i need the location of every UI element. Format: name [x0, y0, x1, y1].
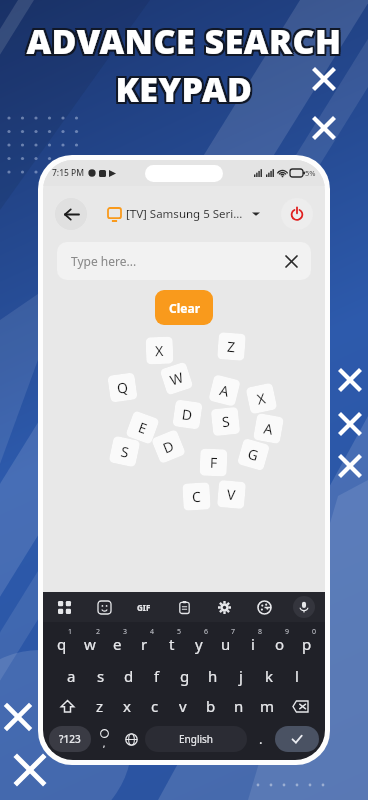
staticText: KEYPAD [115, 64, 253, 110]
button[interactable]: 2 [76, 626, 104, 658]
button[interactable]: 0 [293, 626, 320, 658]
staticText: ADVANCE SEARCH [24, 16, 340, 62]
button[interactable]: 5 [158, 626, 185, 658]
button[interactable]: k [255, 658, 283, 690]
button[interactable]: Type here... [57, 242, 311, 280]
button[interactable]: s [86, 658, 115, 690]
staticText: S [221, 412, 231, 431]
button[interactable]: j [227, 658, 255, 690]
button[interactable]: g [171, 658, 199, 690]
staticText: KEYPAD [117, 66, 255, 112]
staticText: b [206, 696, 216, 716]
staticText: 7 [231, 627, 236, 637]
button[interactable]: Q [107, 372, 138, 403]
staticText: 5 [177, 627, 182, 637]
button[interactable]: W [159, 361, 193, 395]
button[interactable]: Settings [213, 596, 235, 618]
button[interactable]: 4 [131, 626, 158, 658]
button[interactable]: F [199, 448, 227, 476]
staticText: 0 [312, 627, 317, 637]
button[interactable]: d [115, 658, 143, 690]
staticText: GIF [137, 602, 151, 613]
button[interactable]: X [145, 336, 173, 364]
button[interactable]: Change language [117, 724, 145, 754]
button[interactable]: Emoji [91, 724, 117, 754]
staticText: h [208, 666, 218, 686]
button[interactable]: English [145, 726, 247, 752]
button[interactable]: 3 [104, 626, 131, 658]
staticText: D [181, 404, 194, 425]
staticText: KEYPAD [117, 68, 255, 114]
staticText: l [295, 666, 299, 686]
staticText: X [255, 388, 268, 409]
button[interactable]: Clear text [283, 253, 299, 269]
button[interactable]: V [217, 480, 246, 509]
staticText: r [141, 634, 148, 654]
staticText: n [234, 696, 244, 716]
button[interactable]: Themes [253, 596, 275, 618]
button[interactable]: C [182, 482, 211, 511]
button[interactable]: Clear [155, 290, 213, 325]
staticText: ADVANCE SEARCH [26, 18, 342, 64]
button[interactable]: G [237, 438, 270, 471]
button[interactable]: D [172, 399, 203, 430]
staticText: m [260, 696, 275, 716]
button[interactable]: Shift [48, 690, 86, 722]
button[interactable]: a [57, 658, 86, 690]
button[interactable]: z [86, 690, 113, 722]
button[interactable]: Enter [275, 726, 319, 752]
button[interactable]: E [125, 410, 160, 445]
button[interactable]: Back [55, 198, 87, 230]
staticText: English [179, 732, 214, 746]
button[interactable]: 8 [239, 626, 266, 658]
staticText: 8 [258, 627, 263, 637]
button[interactable]: ?123 [49, 726, 91, 752]
staticText: w [84, 634, 96, 654]
button[interactable]: Backspace [281, 690, 320, 722]
staticText: g [180, 666, 190, 686]
button[interactable]: b [197, 690, 225, 722]
button[interactable]: 1 [48, 626, 76, 658]
button[interactable]: x [113, 690, 141, 722]
button[interactable]: c [141, 690, 169, 722]
button[interactable]: . [247, 724, 275, 754]
button[interactable]: [TV] Samsung 5 Seri… [87, 186, 281, 242]
staticText: v [179, 696, 187, 716]
button[interactable]: h [199, 658, 227, 690]
staticText: ADVANCE SEARCH [28, 16, 344, 62]
button[interactable]: m [253, 690, 281, 722]
staticText: Q [116, 377, 129, 398]
staticText: KEYPAD [115, 68, 253, 114]
button[interactable]: n [225, 690, 253, 722]
button[interactable]: 6 [185, 626, 212, 658]
button[interactable]: Clipboard [173, 596, 195, 618]
staticText: a [67, 666, 76, 686]
button[interactable]: v [169, 690, 197, 722]
button[interactable]: Power [281, 198, 313, 230]
staticText: ADVANCE SEARCH [26, 20, 342, 66]
button[interactable]: 7 [212, 626, 239, 658]
staticText: ADVANCE SEARCH [24, 20, 340, 66]
button[interactable]: 9 [266, 626, 293, 658]
button[interactable]: Voice input [293, 596, 315, 618]
staticText: Clear [169, 300, 200, 316]
button[interactable]: S [211, 407, 240, 436]
staticText: E [136, 417, 150, 438]
button[interactable]: Apps [53, 596, 75, 618]
button[interactable]: f [143, 658, 171, 690]
button[interactable]: Z [217, 332, 246, 361]
staticText: . [259, 730, 263, 748]
button[interactable]: GIF [133, 596, 155, 618]
button[interactable]: Stickers [93, 596, 115, 618]
button[interactable]: D [151, 429, 186, 464]
staticText: ADVANCE SEARCH [26, 16, 342, 62]
button[interactable]: A [253, 413, 284, 444]
button[interactable]: l [283, 658, 311, 690]
button[interactable]: S [108, 435, 140, 467]
staticText: KEYPAD [117, 64, 255, 110]
button[interactable]: X [245, 382, 277, 414]
staticText: q [57, 634, 67, 654]
staticText: W [167, 367, 187, 389]
staticText: 1 [68, 627, 73, 637]
button[interactable]: A [208, 374, 241, 407]
